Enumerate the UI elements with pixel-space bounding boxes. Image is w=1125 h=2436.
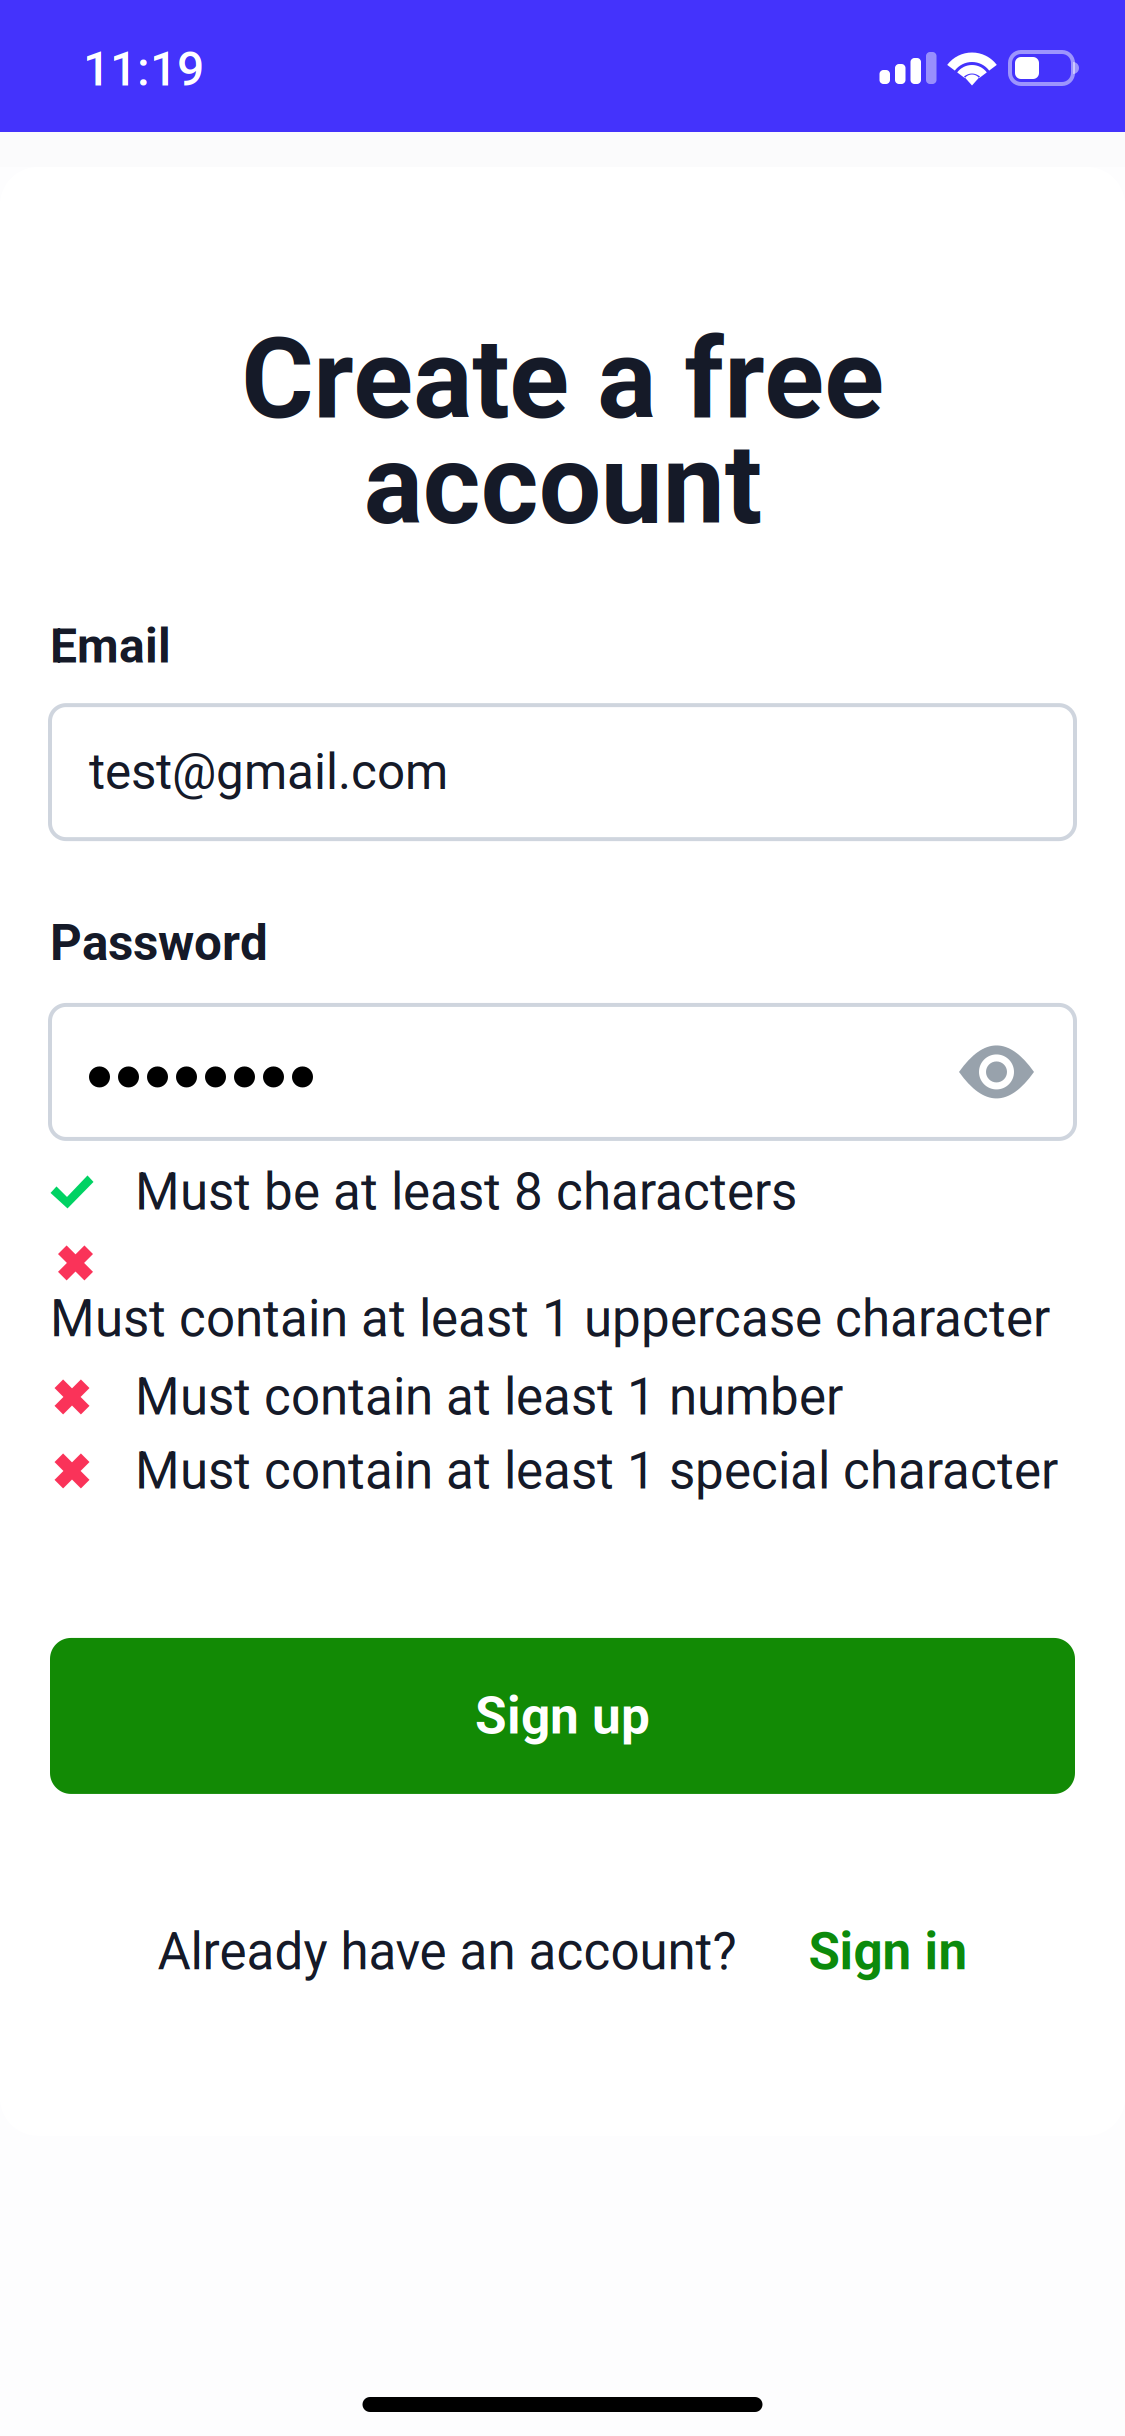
staticText: Must contain at least 1 uppercase charac… (50, 1289, 1050, 1349)
staticText: Email (50, 618, 171, 674)
button[interactable]: Show password (959, 1045, 1034, 1099)
staticText: Sign in (808, 1922, 967, 1982)
staticText: Must be at least 8 characters (135, 1162, 797, 1222)
button[interactable]: Sign up (50, 1638, 1075, 1794)
staticText: Password (50, 914, 268, 972)
staticText: Sign up (475, 1686, 650, 1746)
staticText: test@gmail.com (89, 743, 448, 801)
staticText: Must contain at least 1 number (135, 1367, 843, 1427)
staticText: Create a free account (241, 327, 884, 538)
staticText: Already have an account? (157, 1922, 736, 1982)
staticText: Must contain at least 1 special characte… (135, 1441, 1058, 1501)
staticText: 11:19 (83, 41, 204, 97)
button[interactable]: Sign in (808, 1922, 967, 1982)
